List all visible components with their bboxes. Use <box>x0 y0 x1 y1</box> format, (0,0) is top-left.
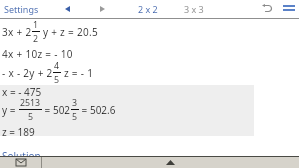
staticText: 4 <box>54 60 60 72</box>
staticText: Settings <box>4 3 39 15</box>
staticText: y = <box>2 103 19 117</box>
staticText: 5 <box>72 111 78 123</box>
staticText: 5 <box>28 111 34 123</box>
staticText: 3x + 2 <box>2 25 32 39</box>
staticText: Solution <box>2 149 41 163</box>
button[interactable] <box>93 0 111 18</box>
staticText: y + z = 20.5 <box>40 25 98 39</box>
button[interactable]: Settings <box>0 0 60 18</box>
button[interactable] <box>280 0 297 16</box>
staticText: 1 <box>33 19 39 31</box>
staticText: = 502 <box>42 103 71 117</box>
staticText: 2513 <box>20 97 41 109</box>
staticText: 2 x 2 <box>138 3 158 15</box>
button[interactable]: 3 x 3 <box>176 0 211 18</box>
staticText: 4x + 10z = - 10 <box>2 47 73 61</box>
staticText: 5 <box>54 74 60 86</box>
button[interactable]: 2 x 2 <box>130 0 165 18</box>
staticText: 3 <box>72 97 78 109</box>
button[interactable] <box>42 157 299 168</box>
staticText: z = - 1 <box>61 66 94 80</box>
button[interactable] <box>258 0 276 16</box>
staticText: x = - 475 <box>2 85 42 99</box>
staticText: - x - 2y + 2 <box>2 66 53 80</box>
button[interactable] <box>0 157 41 168</box>
staticText: 3 x 3 <box>184 3 204 15</box>
staticText: z = 189 <box>2 125 35 139</box>
staticText: 2 <box>33 33 39 45</box>
staticText: = 502.6 <box>79 103 116 117</box>
button[interactable] <box>58 0 76 18</box>
